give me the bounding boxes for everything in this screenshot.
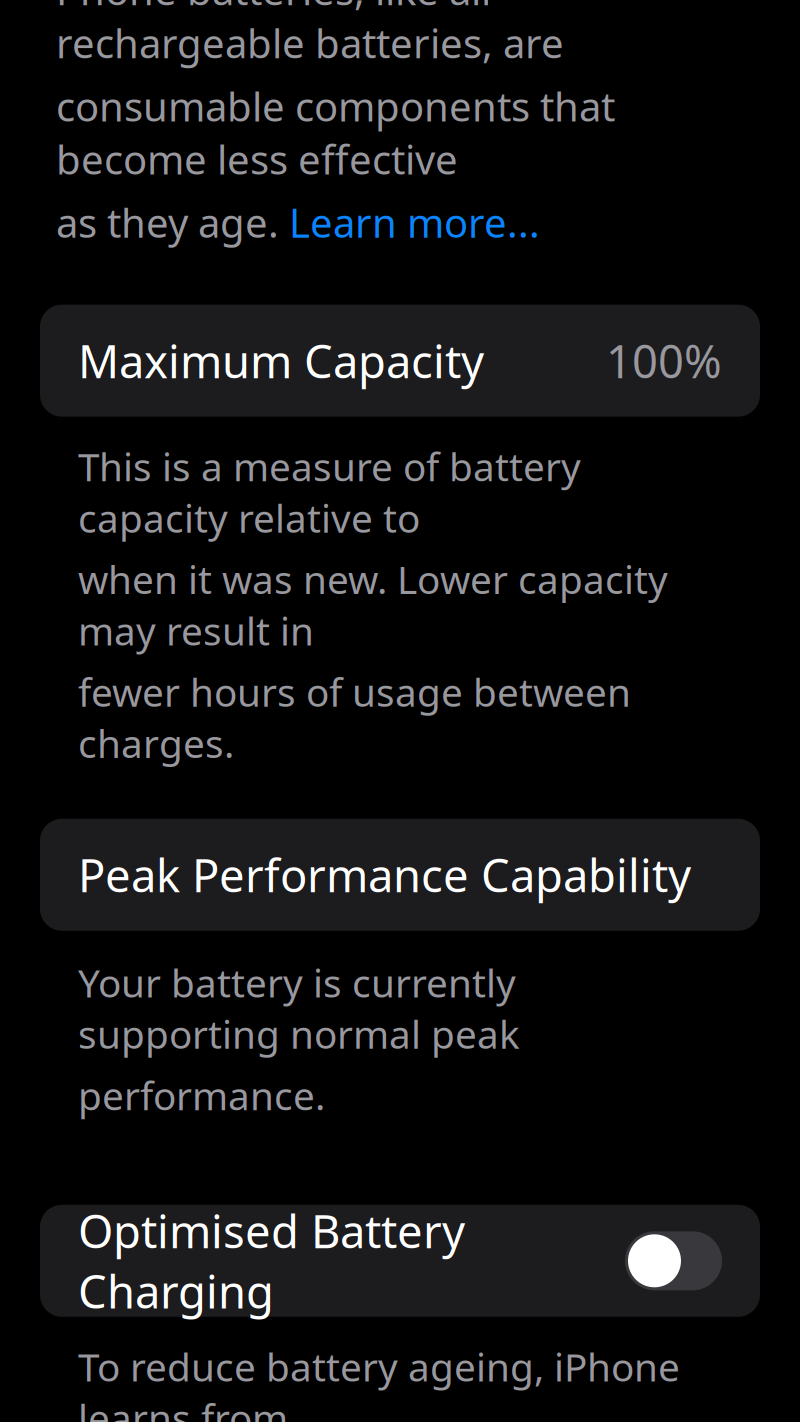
button[interactable]: Learn more... — [289, 196, 540, 249]
staticText: Learn more... — [289, 196, 540, 249]
staticText: consumable components that become less e… — [56, 79, 615, 185]
staticText: Optimised Battery Charging — [78, 1201, 465, 1321]
staticText: Peak Performance Capability — [78, 845, 691, 905]
staticText: 100% — [606, 331, 722, 391]
staticText: fewer hours of usage between charges. — [78, 666, 631, 769]
staticText: Phone batteries, like all rechargeable b… — [56, 0, 564, 69]
button[interactable]: Maximum Capacity — [0, 305, 800, 417]
staticText: Your battery is currently supporting nor… — [78, 957, 520, 1059]
staticText: This is a measure of battery capacity re… — [78, 441, 581, 543]
staticText: when it was new. Lower capacity may resu… — [78, 553, 668, 656]
staticText: To reduce battery ageing, iPhone learns … — [78, 1341, 680, 1422]
staticText: Maximum Capacity — [78, 331, 484, 391]
staticText: performance. — [78, 1069, 325, 1121]
staticText: as they age. — [56, 196, 289, 249]
button[interactable]: Optimised Battery Charging — [0, 1205, 800, 1317]
button[interactable]: Peak Performance Capability — [0, 819, 800, 931]
